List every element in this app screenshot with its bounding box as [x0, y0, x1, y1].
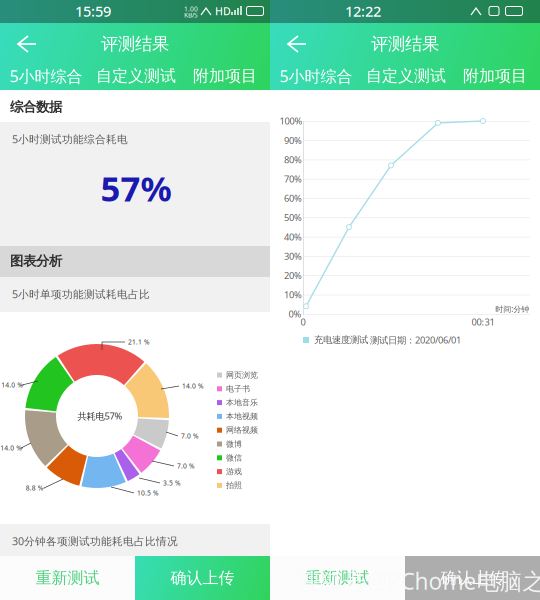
button[interactable]: 附加项目: [458, 63, 532, 89]
staticText: 本地音乐: [226, 398, 258, 407]
staticText: KB/S: [184, 11, 198, 19]
staticText: 附加项目: [463, 66, 527, 86]
staticText: 7.0 %: [181, 432, 199, 440]
staticText: 60%: [284, 192, 302, 204]
staticText: 57%: [100, 165, 171, 211]
staticText: 1.00: [184, 5, 198, 13]
staticText: 5小时测试功能综合耗电: [12, 132, 128, 146]
staticText: 50%: [284, 211, 302, 224]
staticText: 测试日期：2020/06/01: [370, 334, 461, 346]
button[interactable]: 自定义测试: [363, 63, 449, 89]
button[interactable]: Back: [277, 31, 313, 57]
staticText: 充电速度测试: [314, 334, 368, 346]
staticText: 3.5 %: [163, 479, 181, 487]
staticText: 综合数据: [10, 99, 62, 115]
staticText: 微信: [226, 453, 242, 463]
staticText: 14.0 %: [1, 381, 23, 389]
staticText: 自定义测试: [96, 66, 176, 86]
staticText: 共耗电57%: [77, 410, 122, 422]
button[interactable]: 5小时综合: [3, 63, 89, 89]
staticText: 100%: [279, 115, 302, 127]
staticText: 时间:分钟: [495, 304, 529, 314]
staticText: HD: [215, 4, 231, 18]
button[interactable]: Back: [7, 31, 43, 57]
staticText: 90%: [284, 134, 302, 146]
staticText: 拍照: [226, 480, 242, 490]
staticText: 0: [300, 316, 305, 328]
staticText: 5小时单项功能测试耗电占比: [12, 287, 150, 301]
staticText: 12:22: [345, 1, 381, 21]
staticText: 7.0 %: [177, 462, 195, 470]
staticText: 10.5 %: [137, 489, 159, 497]
staticText: 电子书: [226, 384, 250, 394]
staticText: 本地视频: [226, 411, 258, 421]
button[interactable]: 自定义测试: [93, 63, 179, 89]
staticText: 70%: [284, 173, 302, 185]
button[interactable]: 重新测试: [0, 556, 135, 600]
button[interactable]: 确认上传: [135, 556, 270, 600]
staticText: 网页浏览: [226, 370, 258, 380]
staticText: 00:31: [471, 316, 494, 328]
staticText: 40%: [284, 231, 302, 243]
staticText: 30%: [284, 250, 302, 262]
staticText: 评测结果: [371, 33, 439, 55]
staticText: 搜狐号@PChome电脑之家: [297, 566, 540, 596]
staticText: 0%: [288, 308, 301, 320]
staticText: 14.0 %: [0, 444, 22, 452]
staticText: 8.8 %: [26, 484, 44, 492]
button[interactable]: 确认上传: [405, 556, 540, 600]
staticText: 5小时综合: [9, 65, 82, 87]
staticText: 21.1 %: [128, 338, 150, 346]
staticText: 确认上传: [170, 568, 234, 588]
staticText: 重新测试: [35, 568, 99, 588]
button[interactable]: 5小时综合: [273, 63, 359, 89]
staticText: 图表分析: [10, 253, 62, 269]
staticText: 附加项目: [193, 66, 257, 86]
staticText: 30分钟各项测试功能耗电占比情况: [12, 534, 178, 548]
staticText: 重新测试: [305, 568, 369, 588]
button[interactable]: 附加项目: [188, 63, 262, 89]
staticText: 20%: [284, 269, 302, 282]
staticText: 10%: [284, 288, 302, 301]
staticText: 微博: [226, 439, 242, 449]
staticText: 15:59: [75, 1, 111, 21]
staticText: 游戏: [226, 467, 242, 476]
staticText: 5小时综合: [279, 65, 352, 87]
button[interactable]: 重新测试: [270, 556, 405, 600]
staticText: 确认上传: [440, 568, 504, 588]
staticText: 80%: [284, 153, 302, 166]
staticText: 评测结果: [101, 33, 169, 55]
staticText: 网络视频: [226, 425, 258, 435]
staticText: 自定义测试: [366, 66, 446, 86]
staticText: 14.0 %: [182, 382, 204, 390]
